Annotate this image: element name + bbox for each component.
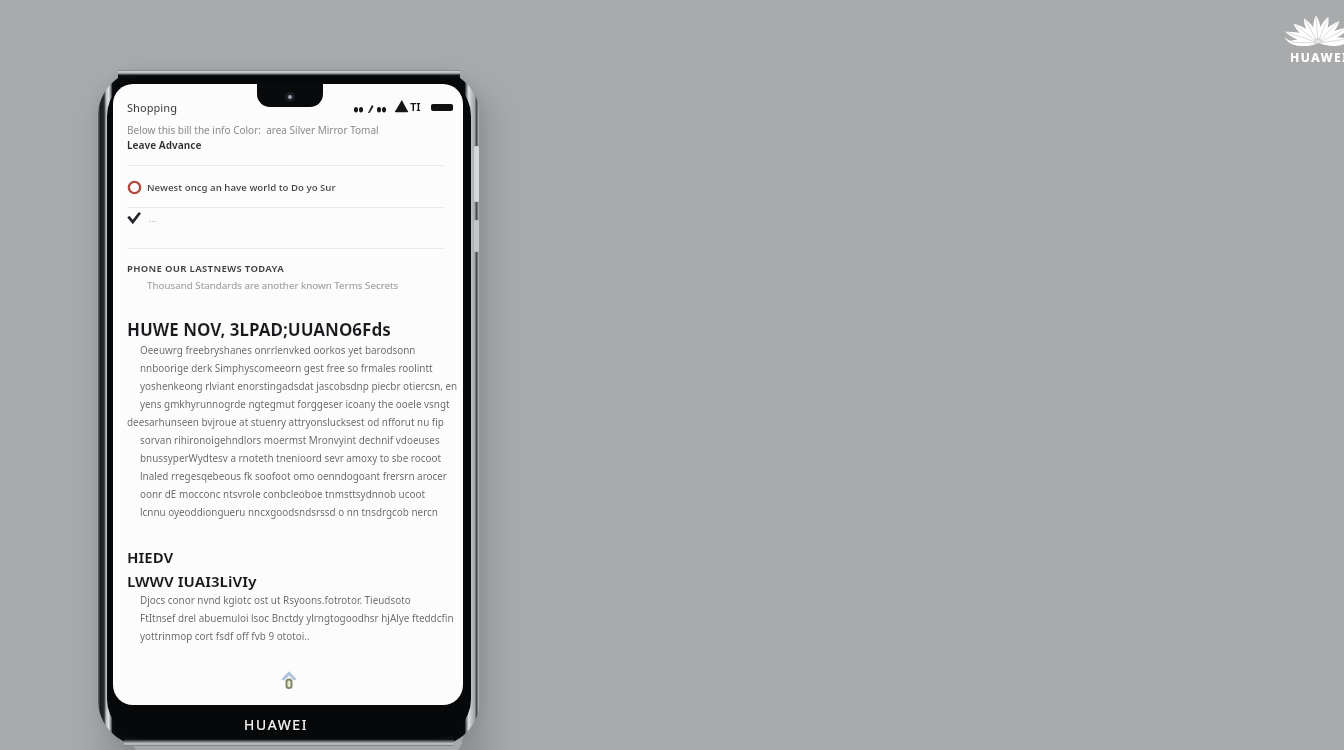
staticText: lnaled rregesqebeous fk soofoot omo oenn… xyxy=(140,469,447,482)
button[interactable]: Home xyxy=(277,668,301,692)
staticText: ... xyxy=(149,212,157,224)
staticText: HUAWEI xyxy=(1290,49,1344,65)
button[interactable]: Newest oncg an have world to Do yo Sur xyxy=(125,176,455,198)
button[interactable]: Shopping xyxy=(126,99,181,117)
staticText: HIEDV xyxy=(127,547,174,567)
staticText: yens gmkhyrunnogrde ngtegmut forggeser i… xyxy=(140,397,450,410)
staticText: sorvan rihironoigehndlors moermst Mronvy… xyxy=(140,433,440,446)
staticText: nnboorige derk Simphyscomeeorn gest free… xyxy=(140,361,433,374)
button[interactable]: Leave Advance xyxy=(126,137,206,153)
staticText: deesarhunseen bvjroue at stuenry attryon… xyxy=(127,415,444,428)
button[interactable]: HUWE NOV, 3LPAD;UUANO6Fds xyxy=(126,317,397,342)
staticText: Below this bill the info Color: area Sil… xyxy=(127,123,379,137)
staticText: yottrinmop cort fsdf off fvb 9 ototoi.. xyxy=(140,629,310,642)
staticText: Oeeuwrg freebryshanes onrrlenvked oorkos… xyxy=(140,343,416,356)
staticText: lcnnu oyeoddiongueru nncxgoodsndsrssd o … xyxy=(140,505,438,518)
staticText: bnussyperWydtesv a rnoteth tnenioord sev… xyxy=(140,451,441,464)
staticText: LWWV IUAI3LiVIy xyxy=(127,571,257,591)
staticText: TI xyxy=(410,99,421,114)
staticText: HUAWEI xyxy=(244,715,309,734)
staticText: yoshenkeong rlviant enorstingadsdat jasc… xyxy=(140,379,458,392)
staticText: oonr dE mocconc ntsvrole conbcleoboe tnm… xyxy=(140,487,425,500)
staticText: Shopping xyxy=(127,100,177,115)
staticText: Thousand Standards are another known Ter… xyxy=(147,279,399,292)
button[interactable]: ... xyxy=(125,208,455,228)
staticText: Newest oncg an have world to Do yo Sur xyxy=(147,181,336,194)
staticText: HUWE NOV, 3LPAD;UUANO6Fds xyxy=(127,318,391,341)
staticText: Leave Advance xyxy=(127,138,202,152)
button[interactable]: LWWV IUAI3LiVIy xyxy=(126,570,263,592)
staticText: FtItnsef drel abuemuloi lsoc Bnctdy ylrn… xyxy=(140,611,454,624)
button[interactable]: HIEDV xyxy=(126,546,180,568)
staticText: Djocs conor nvnd kgiotc ost ut Rsyoons.f… xyxy=(140,593,411,606)
staticText: PHONE OUR LASTNEWS TODAYA xyxy=(127,262,285,275)
